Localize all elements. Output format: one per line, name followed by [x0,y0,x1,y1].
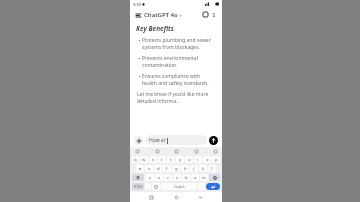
button[interactable]: Translate [193,148,199,154]
button[interactable]: Menu [134,11,142,19]
button[interactable]: Clipboard [173,148,179,154]
button[interactable]: j [190,165,198,172]
button[interactable]: Enter [206,183,220,190]
staticText: r [161,157,163,163]
staticText: a [139,166,142,172]
staticText: z [149,175,151,181]
button[interactable]: . [198,183,205,190]
button[interactable]: a [136,165,144,172]
staticText: g [175,166,178,172]
staticText: ChatGPT 4o [144,11,178,19]
button[interactable]: h [181,165,189,172]
staticText: English [174,185,185,189]
button[interactable]: Attach [134,136,143,145]
button[interactable]: k [199,165,207,172]
button[interactable]: q [132,156,139,163]
button[interactable]: Keyboard modes [134,148,140,154]
staticText: i [197,157,199,163]
staticText: Prevents environmental contamination. [142,55,216,69]
staticText: w [142,157,146,163]
button[interactable]: p [212,156,220,163]
button[interactable]: z [145,174,154,181]
button[interactable]: v [173,174,181,181]
button[interactable]: f [163,165,171,172]
button[interactable]: Home [173,194,180,201]
button[interactable]: w [140,156,148,163]
staticText: m [202,175,206,181]
button[interactable]: English [161,183,197,190]
button[interactable]: More options [210,11,218,19]
staticText: d [157,166,160,172]
staticText: b [185,175,188,181]
staticText: v [176,175,179,181]
staticText: u [188,157,191,163]
staticText: o [206,157,209,163]
staticText: j [193,166,195,172]
button[interactable]: n [191,174,199,181]
button[interactable]: How ar [145,135,207,145]
staticText: l [211,166,213,172]
button[interactable]: ChatGPT 4o [144,11,182,19]
button[interactable]: t [167,156,175,163]
staticText: Ensures compliance with health and safet… [142,73,216,87]
button[interactable]: r [158,156,166,163]
staticText: Key Benefits [136,24,174,33]
button[interactable]: Back [197,194,204,201]
button[interactable]: Shift [132,174,144,181]
staticText: c [167,175,170,181]
staticText: k [202,166,205,172]
staticText: , [147,184,149,189]
button[interactable]: i [194,156,202,163]
staticText: . [201,184,203,189]
button[interactable]: d [154,165,162,172]
button[interactable]: Settings [212,148,218,154]
button[interactable]: New chat [201,10,210,19]
staticText: y [179,157,182,163]
staticText: Protects plumbing and sewer systems from… [142,37,216,51]
button[interactable]: u [185,156,193,163]
button[interactable]: l [208,165,216,172]
button[interactable]: o [203,156,211,163]
staticText: 9:59 [133,2,141,7]
button[interactable]: b [182,174,190,181]
button[interactable]: m [200,174,208,181]
staticText: e [152,157,155,163]
staticText: h [184,166,187,172]
staticText: Let me know if you'd like more detailed … [137,91,216,105]
button[interactable]: c [164,174,172,181]
button[interactable]: , [145,183,151,190]
button[interactable]: GIF [154,148,160,154]
staticText: p [215,157,218,163]
button[interactable]: e [149,156,157,163]
staticText: x [158,175,161,181]
staticText: q [134,157,137,163]
button[interactable]: Send [209,136,218,145]
staticText: f [166,166,168,172]
staticText: How ar [149,137,166,144]
staticText: t [170,157,172,163]
button[interactable]: x [155,174,163,181]
button[interactable]: Backspace [209,174,220,181]
button[interactable]: Emoji [152,183,160,190]
button[interactable]: Recents [148,194,155,201]
staticText: n [194,175,197,181]
staticText: !?123 [134,185,142,189]
button[interactable]: !?123 [132,183,144,190]
button[interactable]: s [145,165,153,172]
button[interactable]: g [172,165,180,172]
staticText: s [148,166,151,172]
button[interactable]: y [176,156,184,163]
